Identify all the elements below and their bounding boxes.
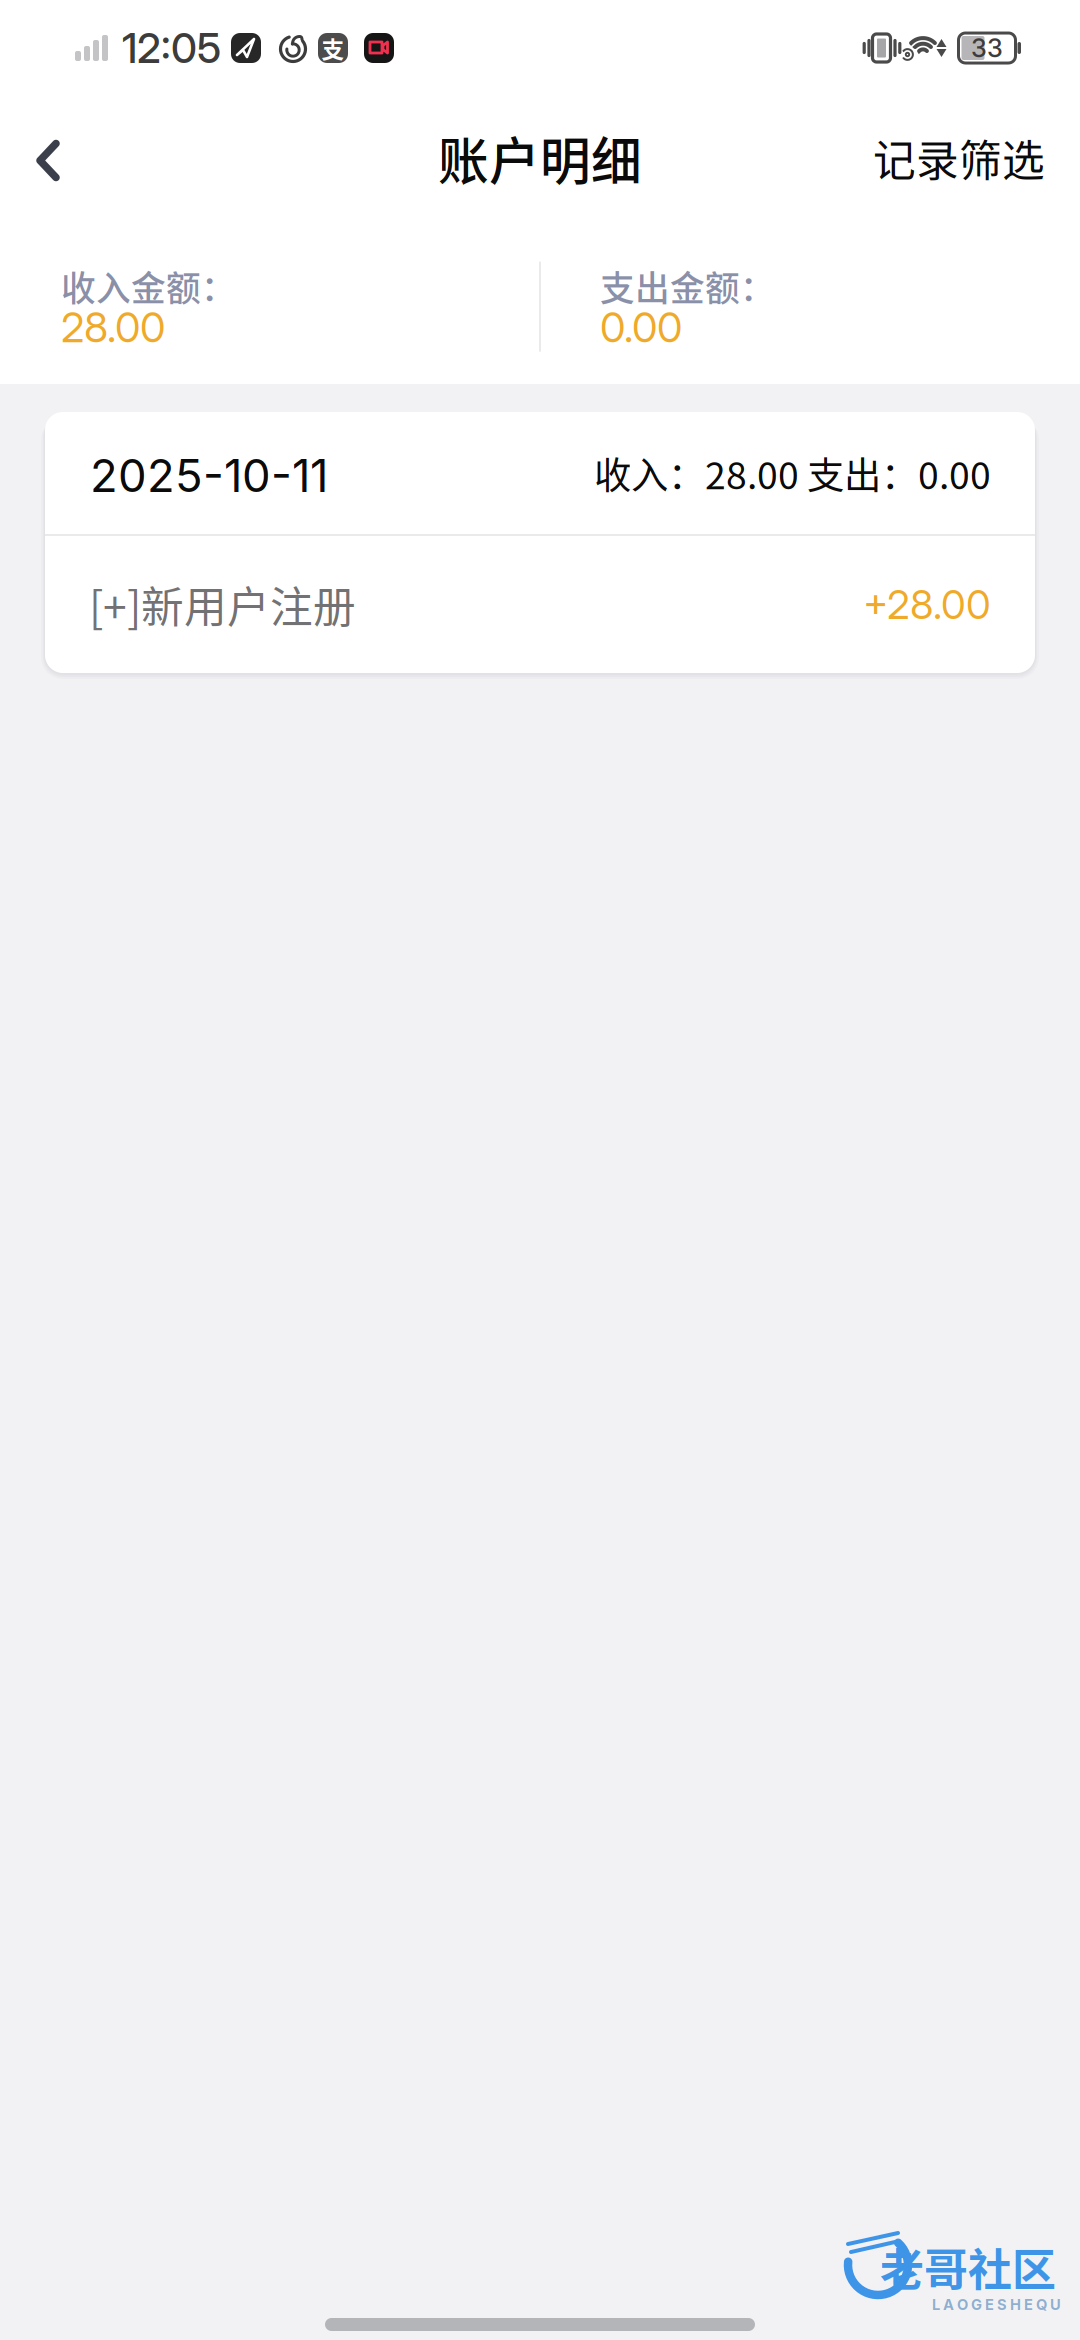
staticText: L A O G E S H E Q U: [932, 2296, 1061, 2313]
staticText: +28.00: [863, 580, 991, 629]
staticText: 支: [321, 32, 344, 64]
staticText: 12:05: [122, 23, 221, 73]
staticText: 0.00: [600, 302, 682, 352]
staticText: 收入金额：: [61, 261, 236, 311]
staticText: 记录筛选: [873, 127, 1045, 189]
staticText: 老哥社区: [880, 2235, 1056, 2299]
staticText: 33: [971, 33, 1003, 63]
staticText: 支出金额：: [600, 261, 775, 311]
staticText: 28.00: [61, 302, 165, 352]
staticText: [+]新用户注册: [89, 574, 356, 635]
button[interactable]: 记录筛选: [867, 101, 1051, 215]
staticText: 2025-10-11: [90, 448, 328, 503]
button[interactable]: [+]新用户注册: [45, 536, 1035, 673]
button[interactable]: 返回: [8, 112, 88, 204]
staticText: 收入：28.00 支出：0.00: [594, 446, 991, 500]
staticText: 账户明细: [438, 121, 642, 195]
